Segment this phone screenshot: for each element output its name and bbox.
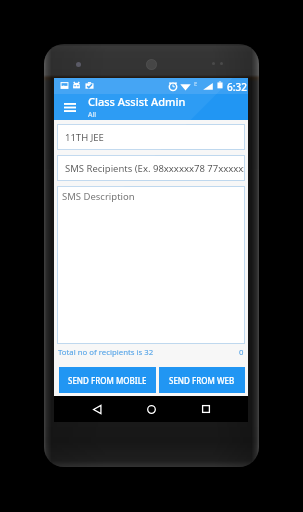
staticText: SMS Description — [62, 190, 135, 203]
button[interactable]: Home — [139, 397, 163, 421]
button[interactable]: 11TH JEE — [57, 124, 245, 150]
button[interactable]: Recent apps — [194, 397, 218, 421]
staticText: Class Assist Admin — [88, 94, 186, 109]
staticText: 0 — [239, 347, 244, 358]
button[interactable]: SEND FROM WEB — [159, 367, 245, 393]
staticText: E — [194, 80, 198, 88]
staticText: All — [88, 110, 97, 120]
staticText: SMS Recipients (Ex. 98xxxxxx78 77xxxxxx — [65, 162, 244, 175]
button[interactable]: SEND FROM MOBILE — [59, 367, 156, 393]
button[interactable]: Back — [85, 397, 109, 421]
staticText: 11TH JEE — [65, 131, 104, 144]
staticText: Total no of recipients is 32 — [58, 347, 154, 358]
staticText: SEND FROM MOBILE — [68, 375, 147, 386]
staticText: 6:32 — [227, 80, 247, 94]
staticText: SEND FROM WEB — [169, 375, 235, 386]
button[interactable]: SMS Description — [57, 186, 245, 344]
button[interactable]: SMS Recipients (Ex. 98xxxxxx78 77xxxxxx — [57, 155, 245, 181]
button[interactable]: Open navigation menu — [60, 97, 80, 117]
